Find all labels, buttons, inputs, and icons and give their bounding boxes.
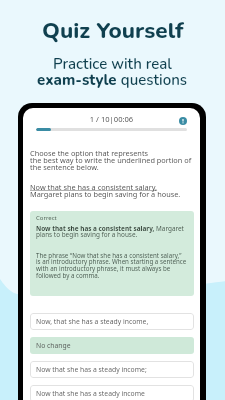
button[interactable]: Now, that she has a steady income,	[30, 313, 194, 330]
staticText: The phrase “Now that she has a consisten…	[36, 251, 187, 280]
staticText: No change	[36, 341, 71, 350]
button[interactable]: Information	[179, 117, 187, 125]
staticText: Now that she has a consistent salary, Ma…	[36, 224, 184, 239]
staticText: Correct	[36, 214, 57, 222]
staticText: Choose the option that represents the be…	[30, 148, 192, 172]
staticText: Quiz Yourself	[42, 15, 184, 46]
staticText: Practice with real	[53, 54, 172, 74]
staticText: Now, that she has a steady income,	[36, 317, 149, 326]
button[interactable]: Now that she has a steady income;	[30, 361, 194, 378]
staticText: Now that she has a steady income;	[36, 365, 147, 374]
button[interactable]: Now that she has a steady income	[30, 385, 194, 400]
staticText: exam-style questions	[37, 70, 188, 90]
staticText: Now that she has a steady income	[36, 389, 145, 398]
button[interactable]: No change	[30, 337, 194, 354]
staticText: Now that she has a consistent salary, Ma…	[30, 182, 181, 199]
staticText: 1 / 10|00:06	[23, 114, 200, 124]
